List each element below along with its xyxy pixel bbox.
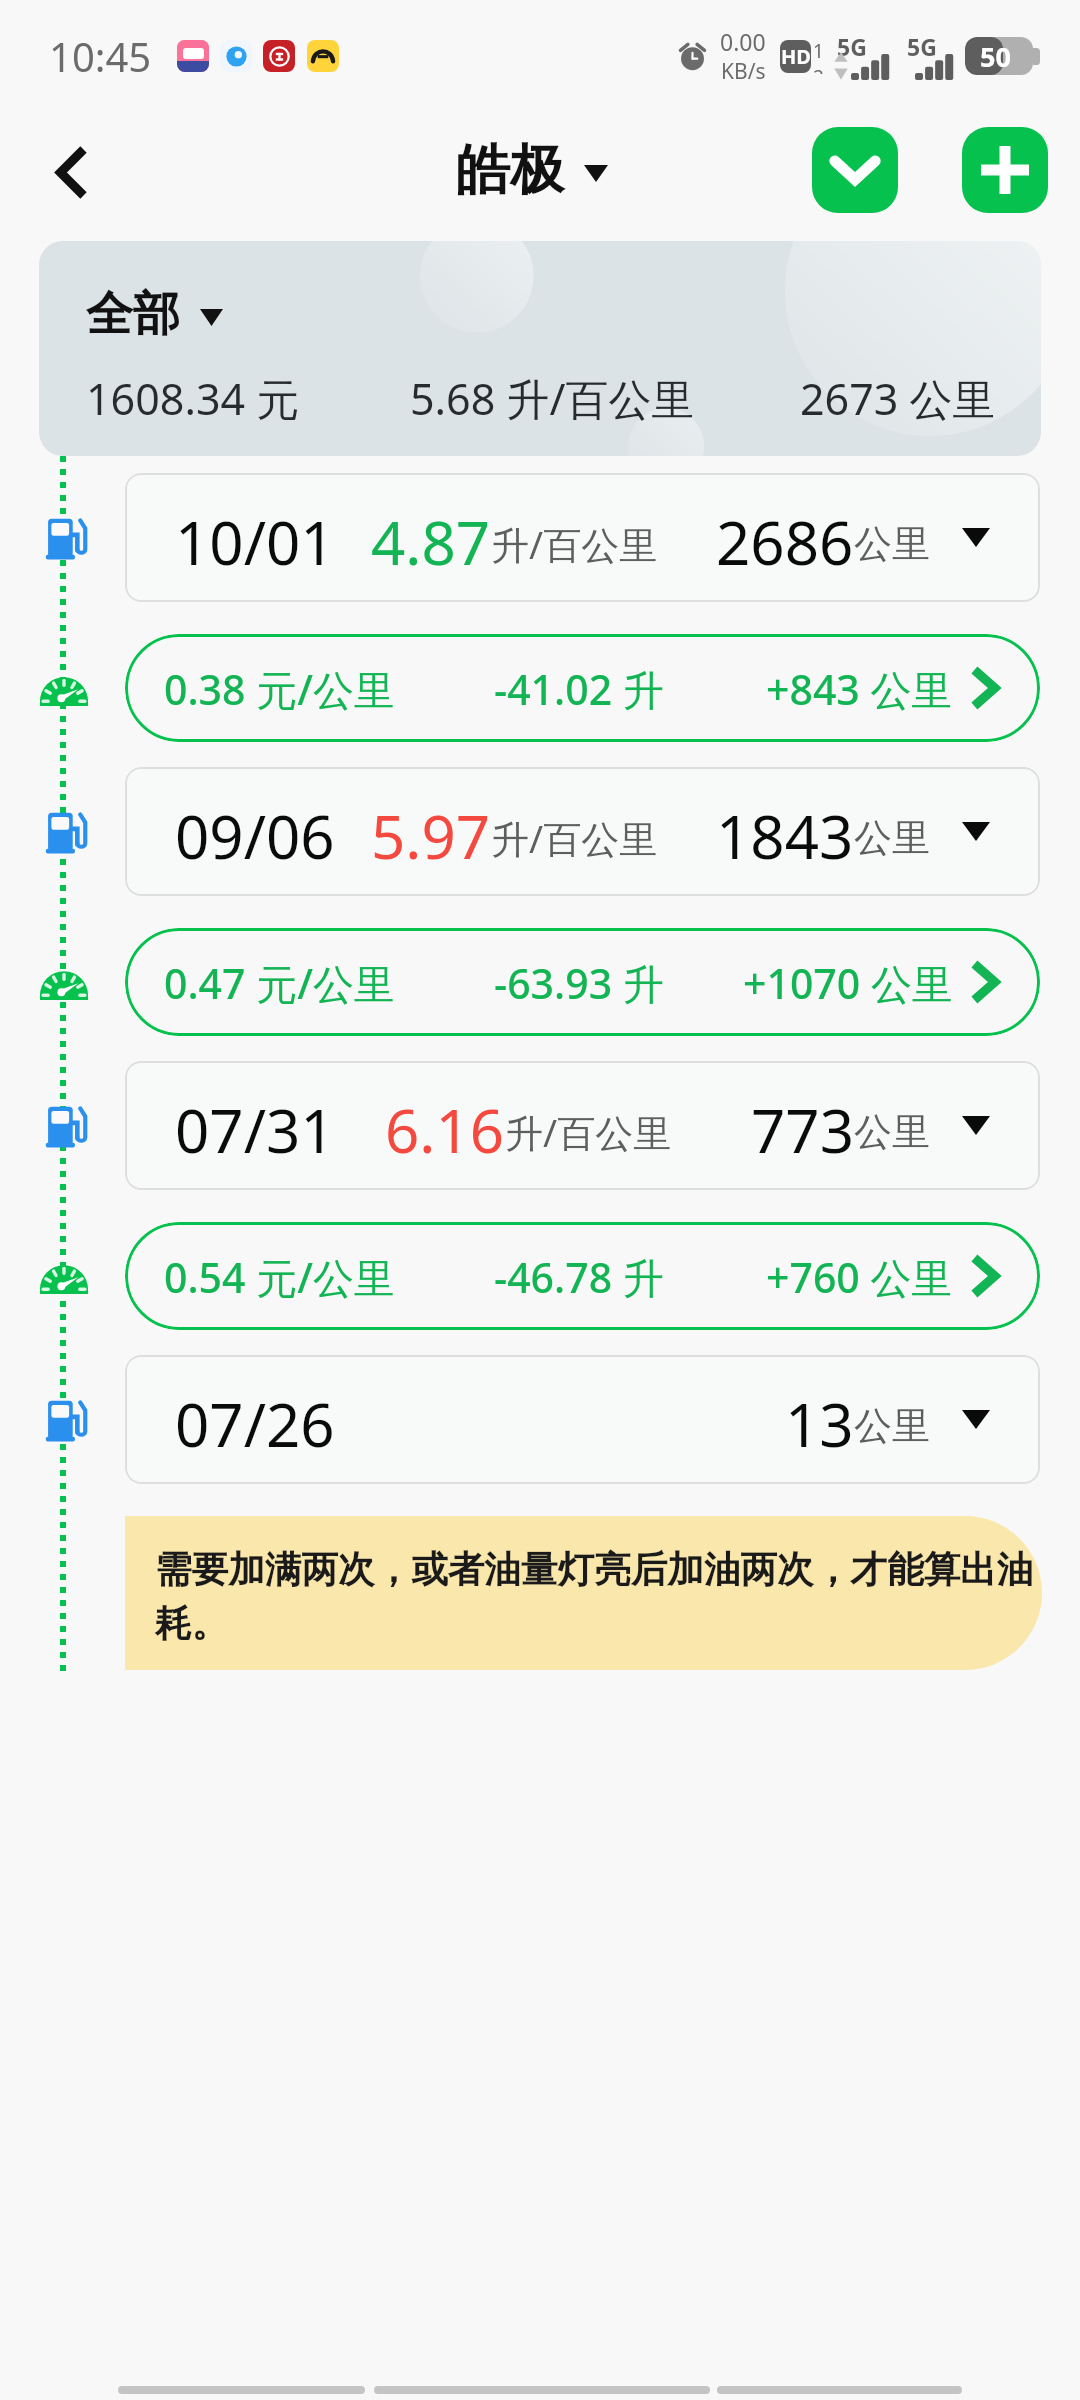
staticText: 升/百公里 [491, 518, 658, 570]
staticText: +843 公里 [766, 661, 953, 717]
staticText: 5.97 [371, 795, 491, 877]
button[interactable]: 0.38 元/公里 [125, 634, 1040, 742]
staticText: 1 [813, 38, 824, 64]
staticText: 1843 [716, 795, 854, 877]
staticText: 升/百公里 [505, 1106, 672, 1158]
staticText: +1070 公里 [743, 955, 953, 1011]
staticText: 0.38 元/公里 [164, 661, 395, 717]
staticText: 皓极 [456, 136, 564, 204]
staticText: 4.87 [371, 501, 491, 583]
staticText: 09/06 [175, 795, 335, 877]
staticText: 公里 [854, 1108, 930, 1156]
staticText: 5G [837, 31, 867, 62]
staticText: 10:45 [49, 29, 152, 83]
staticText: 6.16 [385, 1089, 505, 1171]
staticText: 0.47 元/公里 [164, 955, 395, 1011]
staticText: 公里 [854, 520, 930, 568]
staticText: -63.93 升 [494, 955, 664, 1011]
staticText: 773 [751, 1089, 854, 1171]
staticText: 公里 [854, 814, 930, 862]
staticText: 需要加满两次，或者油量灯亮后加油两次，才能算出油耗。 [155, 1547, 1042, 1647]
button[interactable]: 全部 [39, 241, 1041, 456]
staticText: -41.02 升 [494, 661, 664, 717]
staticText: 5.68 升/百公里 [410, 369, 695, 428]
button[interactable]: 皓极 [456, 136, 608, 204]
button[interactable]: Back [26, 124, 118, 216]
staticText: 2686 [716, 501, 854, 583]
staticText: 5G [907, 31, 937, 62]
staticText: 07/26 [175, 1383, 335, 1465]
button[interactable]: 0.47 元/公里 [125, 928, 1040, 1036]
staticText: KB/s [721, 57, 766, 86]
staticText: 1608.34 元 [86, 369, 300, 428]
button[interactable]: 0.54 元/公里 [125, 1222, 1040, 1330]
staticText: 13 [785, 1383, 854, 1465]
staticText: 公里 [854, 1402, 930, 1450]
staticText: -46.78 升 [494, 1249, 664, 1305]
button[interactable]: Expand [812, 127, 898, 213]
staticText: +760 公里 [766, 1249, 953, 1305]
staticText: 10/01 [175, 501, 335, 583]
button[interactable]: 07/31 [125, 1061, 1040, 1190]
staticText: 2673 公里 [800, 369, 996, 428]
button[interactable]: Back [118, 2386, 365, 2394]
staticText: 2 [813, 64, 824, 74]
staticText: 全部 [86, 285, 180, 344]
button[interactable]: Recents [717, 2386, 962, 2394]
button[interactable]: Add [962, 127, 1048, 213]
staticText: HD [781, 43, 811, 70]
button[interactable]: 09/06 [125, 767, 1040, 896]
staticText: 0.54 元/公里 [164, 1249, 395, 1305]
staticText: 50 [980, 38, 1011, 75]
staticText: 0.00 [720, 26, 766, 57]
button[interactable]: 07/26 [125, 1355, 1040, 1484]
staticText: 07/31 [175, 1089, 335, 1171]
staticText: 升/百公里 [491, 812, 658, 864]
button[interactable]: 10/01 [125, 473, 1040, 602]
